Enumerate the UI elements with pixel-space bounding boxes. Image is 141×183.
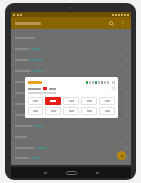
button[interactable] [15, 32, 127, 43]
button[interactable]: Recents [84, 167, 110, 178]
button[interactable] [15, 76, 127, 87]
button[interactable] [15, 87, 127, 98]
button[interactable] [99, 107, 115, 115]
button[interactable] [81, 107, 97, 115]
button[interactable]: More options [118, 19, 127, 28]
button[interactable] [45, 97, 61, 105]
button[interactable] [99, 97, 115, 105]
button[interactable]: Home [58, 167, 84, 178]
button[interactable]: Info [112, 87, 115, 90]
button[interactable] [63, 107, 79, 115]
button[interactable] [28, 97, 43, 105]
button[interactable] [28, 107, 43, 115]
button[interactable]: Back [32, 167, 58, 178]
button[interactable]: Close [111, 80, 115, 84]
button[interactable] [15, 120, 127, 131]
button[interactable] [45, 107, 61, 115]
button[interactable] [15, 43, 127, 54]
button[interactable]: Search [107, 19, 116, 28]
button[interactable] [15, 98, 127, 109]
button[interactable] [81, 97, 97, 105]
button[interactable]: Add [117, 151, 126, 160]
button[interactable] [15, 109, 127, 120]
button[interactable] [63, 97, 79, 105]
button[interactable] [15, 142, 127, 153]
button[interactable] [15, 65, 127, 76]
button[interactable] [15, 54, 127, 65]
button[interactable] [15, 131, 127, 142]
button[interactable] [15, 153, 127, 162]
